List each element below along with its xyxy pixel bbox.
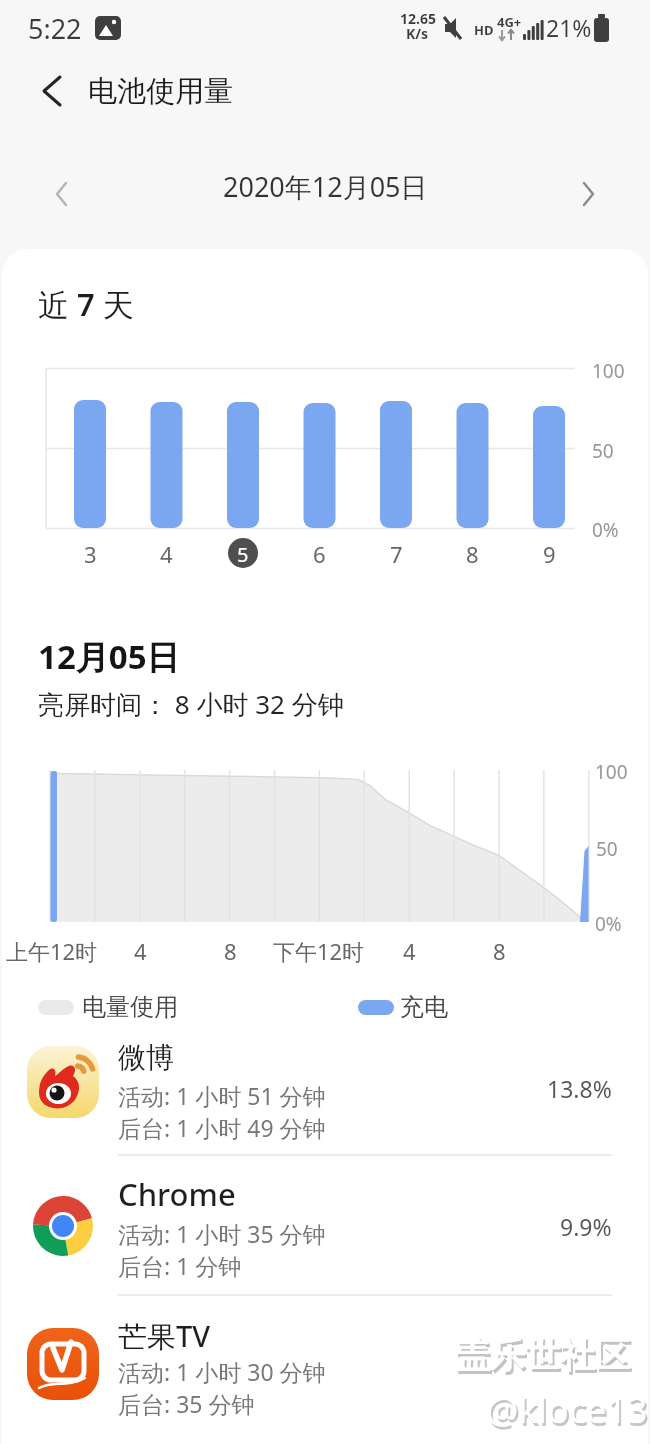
staticText: 盖乐世社区 (457, 1336, 632, 1380)
button[interactable] (36, 170, 86, 220)
button[interactable] (564, 170, 614, 220)
button[interactable] (0, 1036, 650, 1154)
staticText: 5 (237, 541, 249, 568)
staticText: 盖乐世社区 (455, 1333, 630, 1377)
staticText: 近 7 天 (38, 283, 134, 325)
staticText: 活动: 1 小时 51 分钟 (118, 1080, 326, 1111)
staticText: Chrome (118, 1173, 236, 1215)
staticText: 微博 (118, 1040, 174, 1075)
staticText: 亮屏时间： 8 小时 32 分钟 (38, 686, 344, 722)
staticText: 后台: 1 分钟 (118, 1250, 242, 1281)
staticText: 50 (592, 438, 614, 464)
button[interactable] (0, 1156, 650, 1294)
staticText: 电池使用量 (88, 73, 233, 110)
staticText: 上午12时 (6, 936, 98, 966)
staticText: 3 (84, 539, 97, 569)
staticText: 后台: 35 分钟 (118, 1388, 255, 1419)
staticText: 9.9% (560, 1211, 612, 1242)
staticText: 4 (134, 936, 147, 966)
staticText: 芒果TV (118, 1316, 211, 1356)
staticText: 活动: 1 小时 35 分钟 (118, 1218, 326, 1249)
staticText: 充电 (400, 992, 448, 1022)
staticText: 电量使用 (82, 992, 178, 1022)
staticText: 4 (403, 936, 416, 966)
staticText: 9 (543, 539, 556, 569)
staticText: 6 (313, 539, 326, 569)
staticText: 活动: 1 小时 30 分钟 (118, 1356, 326, 1387)
staticText: HD (474, 21, 494, 39)
staticText: 下午12时 (273, 936, 365, 966)
staticText: 8 (493, 936, 506, 966)
staticText: 12.65 (400, 9, 436, 28)
staticText: 12月05日 (38, 634, 180, 679)
staticText: 8 (224, 936, 237, 966)
staticText: 21% (546, 12, 592, 43)
staticText: 13.8% (547, 1073, 612, 1104)
staticText: 100 (592, 358, 625, 384)
staticText: @kloce13 (488, 1388, 650, 1437)
staticText: 7 (390, 539, 403, 569)
staticText: 4 (160, 539, 173, 569)
button[interactable] (0, 1296, 650, 1444)
staticText: 后台: 1 小时 49 分钟 (118, 1112, 326, 1143)
button[interactable] (30, 66, 80, 116)
staticText: 8 (466, 539, 479, 569)
staticText: K/s (406, 24, 429, 43)
staticText: 100 (595, 759, 628, 785)
staticText: 5:22 (28, 10, 82, 47)
staticText: 4G+ (497, 13, 522, 31)
staticText: @kloce13 (486, 1385, 648, 1434)
staticText: 50 (596, 836, 618, 862)
staticText: 0% (595, 911, 622, 937)
staticText: 0% (592, 517, 619, 543)
staticText: 2020年12月05日 (223, 168, 428, 205)
